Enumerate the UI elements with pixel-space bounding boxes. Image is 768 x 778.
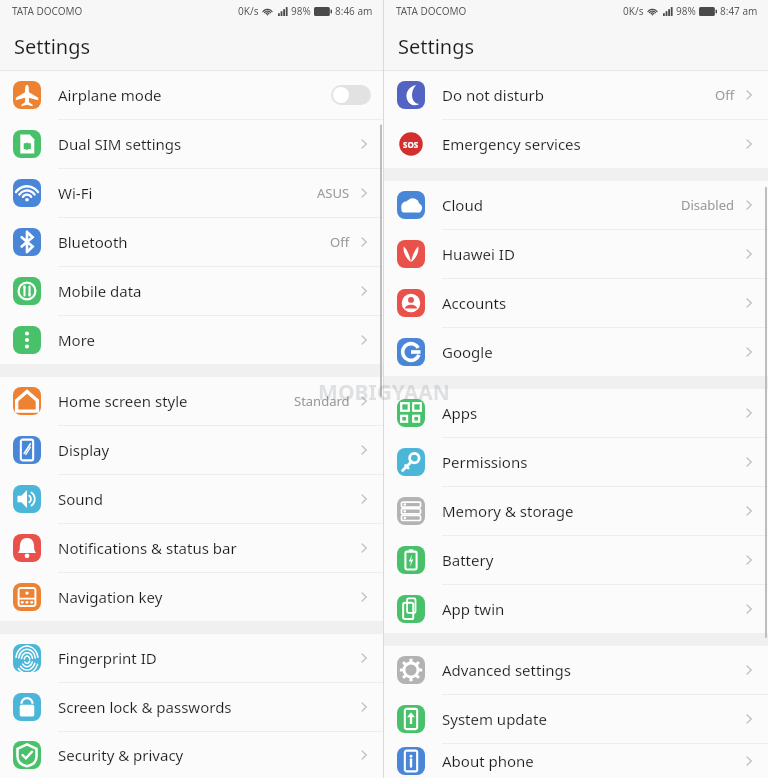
button[interactable]: Airplane mode toggle xyxy=(331,85,371,105)
other: Accounts xyxy=(397,289,425,317)
staticText: Accounts xyxy=(442,293,507,313)
button[interactable]: Apps xyxy=(384,389,768,438)
button[interactable]: Do not disturb xyxy=(384,71,768,120)
button[interactable]: Sound xyxy=(0,475,383,524)
staticText: Off xyxy=(330,233,350,251)
staticText: 8:47 am xyxy=(720,4,758,18)
button[interactable]: Security & privacy xyxy=(0,732,383,778)
button[interactable]: About phone xyxy=(384,744,768,778)
staticText: Mobile data xyxy=(58,281,142,301)
other: Screen lock & passwords xyxy=(13,693,41,721)
staticText: Advanced settings xyxy=(442,660,571,680)
staticText: System update xyxy=(442,709,547,729)
other: Permissions xyxy=(397,448,425,476)
other: Google xyxy=(397,338,425,366)
other: Wi-Fi xyxy=(13,179,41,207)
staticText: Battery xyxy=(442,550,494,570)
staticText: Cloud xyxy=(442,195,483,215)
other: Notifications & status bar xyxy=(13,534,41,562)
button[interactable]: Cloud xyxy=(384,181,768,230)
other: System update xyxy=(397,705,425,733)
staticText: Security & privacy xyxy=(58,745,184,765)
staticText: TATA DOCOMO xyxy=(396,4,467,18)
staticText: About phone xyxy=(442,751,534,771)
staticText: 98% xyxy=(676,4,696,18)
staticText: Off xyxy=(715,86,735,104)
staticText: More xyxy=(58,330,96,350)
other: Home screen style xyxy=(13,387,41,415)
button[interactable]: Screen lock & passwords xyxy=(0,683,383,732)
button[interactable]: Emergency services xyxy=(384,120,768,168)
button[interactable]: Notifications & status bar xyxy=(0,524,383,573)
button[interactable]: Memory & storage xyxy=(384,487,768,536)
staticText: Home screen style xyxy=(58,391,188,411)
button[interactable]: Home screen style xyxy=(0,377,383,426)
button[interactable]: Google xyxy=(384,328,768,376)
staticText: 8:46 am xyxy=(335,4,373,18)
button[interactable]: App twin xyxy=(384,585,768,633)
staticText: SOS xyxy=(403,139,419,150)
button[interactable]: Airplane mode xyxy=(0,71,383,120)
other: Fingerprint ID xyxy=(13,644,41,672)
staticText: Display xyxy=(58,440,110,460)
staticText: 0K/s xyxy=(623,4,644,18)
staticText: 0K/s xyxy=(238,4,259,18)
staticText: 98% xyxy=(291,4,311,18)
other: Do not disturb xyxy=(397,81,425,109)
other: Memory & storage xyxy=(397,497,425,525)
button[interactable]: Bluetooth xyxy=(0,218,383,267)
other: About phone xyxy=(397,747,425,775)
button[interactable]: More xyxy=(0,316,383,364)
staticText: Google xyxy=(442,342,493,362)
other: Emergency services xyxy=(397,130,425,158)
button[interactable]: Fingerprint ID xyxy=(0,634,383,683)
other: App twin xyxy=(397,595,425,623)
staticText: Navigation key xyxy=(58,587,163,607)
button[interactable]: Advanced settings xyxy=(384,646,768,695)
staticText: Do not disturb xyxy=(442,85,544,105)
other: Security & privacy xyxy=(13,741,41,769)
button[interactable]: Mobile data xyxy=(0,267,383,316)
staticText: Emergency services xyxy=(442,134,581,154)
button[interactable]: Huawei ID xyxy=(384,230,768,279)
other: Mobile data xyxy=(13,277,41,305)
staticText: Bluetooth xyxy=(58,232,128,252)
button[interactable]: Battery xyxy=(384,536,768,585)
other: Cloud xyxy=(397,191,425,219)
staticText: Notifications & status bar xyxy=(58,538,237,558)
button[interactable]: Dual SIM settings xyxy=(0,120,383,169)
button[interactable]: Display xyxy=(0,426,383,475)
other: Battery xyxy=(397,546,425,574)
button[interactable]: System update xyxy=(384,695,768,744)
staticText: ASUS xyxy=(317,184,350,202)
staticText: Sound xyxy=(58,489,104,509)
other: Navigation key xyxy=(13,583,41,611)
other: Apps xyxy=(397,399,425,427)
other: Huawei ID xyxy=(397,240,425,268)
staticText: TATA DOCOMO xyxy=(12,4,83,18)
staticText: Memory & storage xyxy=(442,501,574,521)
staticText: Screen lock & passwords xyxy=(58,697,232,717)
other: Advanced settings xyxy=(397,656,425,684)
staticText: Apps xyxy=(442,403,478,423)
button[interactable]: Wi-Fi xyxy=(0,169,383,218)
other: Display xyxy=(13,436,41,464)
staticText: Fingerprint ID xyxy=(58,648,157,668)
staticText: Disabled xyxy=(681,196,735,214)
other: Airplane mode xyxy=(13,81,41,109)
other: Bluetooth xyxy=(13,228,41,256)
button[interactable]: Navigation key xyxy=(0,573,383,621)
staticText: Settings xyxy=(398,33,475,60)
staticText: App twin xyxy=(442,599,505,619)
button[interactable]: Permissions xyxy=(384,438,768,487)
other: More xyxy=(13,326,41,354)
button[interactable]: Accounts xyxy=(384,279,768,328)
staticText: Huawei ID xyxy=(442,244,515,264)
staticText: Airplane mode xyxy=(58,85,162,105)
staticText: Dual SIM settings xyxy=(58,134,182,154)
staticText: Wi-Fi xyxy=(58,183,93,203)
staticText: Permissions xyxy=(442,452,528,472)
staticText: MOBIGYAAN xyxy=(318,378,450,407)
staticText: Standard xyxy=(294,392,350,410)
staticText: Settings xyxy=(14,33,91,60)
